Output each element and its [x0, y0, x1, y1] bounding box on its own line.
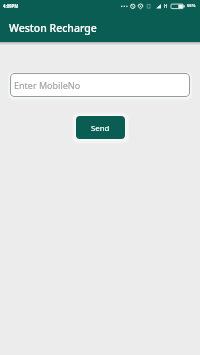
button[interactable]: Enter MobileNo: [10, 73, 190, 97]
staticText: Weston Recharge: [9, 21, 97, 35]
staticText: 55%: [187, 3, 196, 9]
staticText: Enter MobileNo: [14, 79, 81, 91]
staticText: Send: [91, 123, 110, 134]
staticText: 4:09PM: [3, 3, 19, 9]
button[interactable]: Send: [76, 116, 125, 139]
staticText: H: [164, 3, 168, 9]
